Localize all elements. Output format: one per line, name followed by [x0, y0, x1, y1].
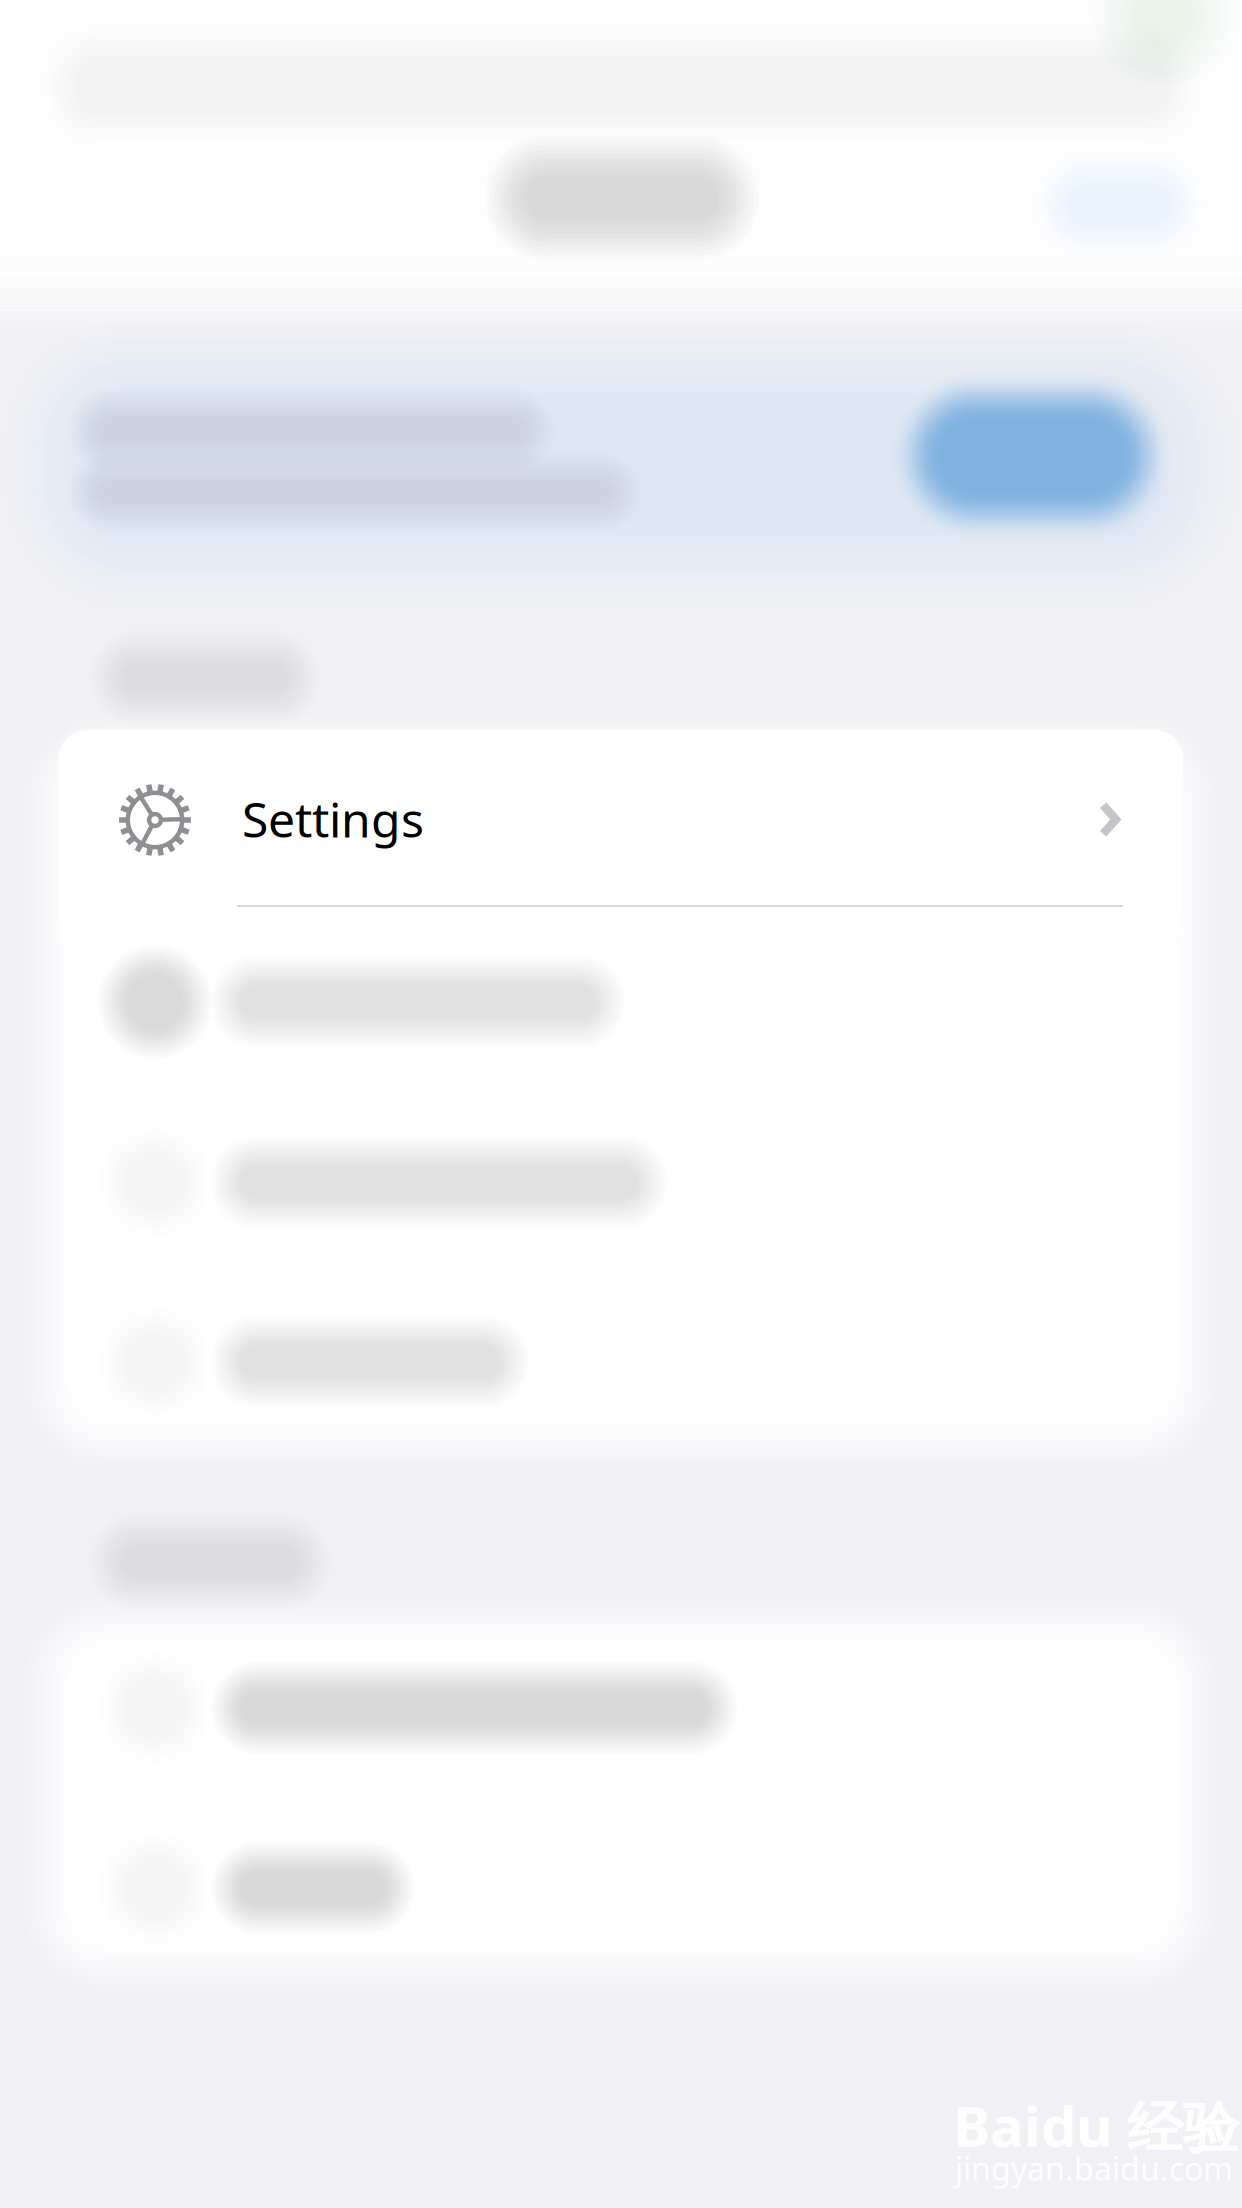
staticText: Settings [242, 787, 424, 851]
staticText: jingyan.baidu.com [955, 2147, 1233, 2189]
button[interactable]: Settings [59, 730, 1183, 930]
staticText: Baidu 经验 [953, 2088, 1239, 2163]
